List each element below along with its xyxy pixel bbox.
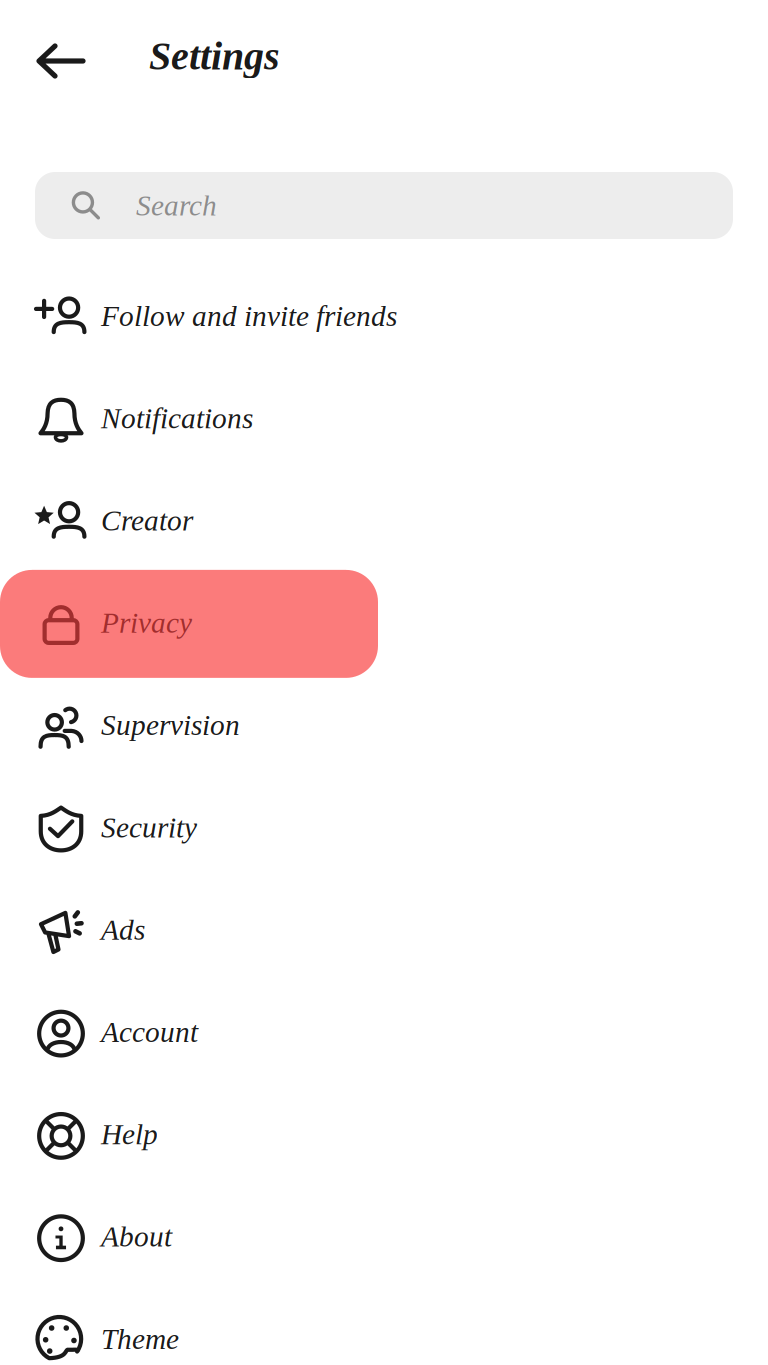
button[interactable]: Notifications	[0, 367, 768, 469]
staticText: Theme	[101, 1323, 179, 1355]
button[interactable]: Supervision	[0, 674, 768, 776]
button[interactable]: Privacy	[0, 572, 768, 1254]
button[interactable]: Follow and invite friends	[0, 265, 768, 367]
button[interactable]: Back	[0, 20, 105, 100]
staticText: Account	[101, 1016, 198, 1048]
staticText: Search	[136, 189, 217, 222]
button[interactable]: Theme	[0, 1288, 768, 1365]
button[interactable]: Creator	[0, 470, 768, 572]
staticText: Settings	[149, 34, 280, 78]
button[interactable]: Help	[0, 1083, 768, 1185]
staticText: Supervision	[101, 709, 240, 741]
staticText: Help	[101, 1118, 158, 1151]
button[interactable]: Ads	[0, 879, 768, 981]
staticText: Creator	[101, 504, 193, 537]
staticText: About	[101, 1220, 172, 1253]
staticText: Follow and invite friends	[101, 300, 397, 332]
staticText: Notifications	[101, 402, 253, 435]
staticText: Privacy	[101, 607, 192, 639]
button[interactable]: Security	[0, 776, 768, 878]
staticText: Security	[101, 811, 197, 844]
button[interactable]: Account	[0, 981, 768, 1083]
button[interactable]: About	[0, 1186, 768, 1288]
staticText: Ads	[101, 914, 145, 946]
button[interactable]: Search	[0, 172, 733, 239]
